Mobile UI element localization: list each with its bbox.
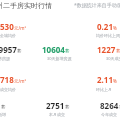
staticText: 州二手房实时行情 (0, 1, 52, 10)
staticText: 1227 (97, 44, 116, 55)
staticText: 套 (1, 104, 6, 110)
staticText: 本月新增 (0, 112, 6, 117)
staticText: % (113, 78, 117, 84)
staticText: 套 (65, 104, 70, 110)
staticText: 在售房源 (0, 56, 10, 61)
staticText: 环比上月 (96, 87, 112, 92)
staticText: 元/m² (14, 25, 26, 31)
staticText: 套 (116, 48, 120, 54)
staticText: 均价环比上周 (96, 33, 120, 38)
staticText: *数据统计来自手动录入 (74, 2, 120, 9)
staticText: 2751 (46, 100, 65, 111)
staticText: 本月成交 (49, 112, 65, 117)
staticText: 39957 (0, 44, 17, 55)
staticText: 套 (119, 104, 120, 110)
staticText: 30天新增房源 (47, 56, 72, 61)
staticText: 套 (17, 48, 22, 54)
staticText: 套 (65, 48, 70, 54)
staticText: 今年成交 (101, 112, 117, 117)
staticText: % (113, 25, 117, 31)
staticText: 718 (0, 74, 14, 85)
staticText: 30天成交房源 (106, 56, 120, 61)
staticText: 成交均价 (0, 87, 16, 92)
staticText: 8264 (100, 100, 119, 111)
staticText: 0.21 (97, 21, 113, 32)
staticText: 元/m² (14, 78, 26, 84)
staticText: 全城均价 (0, 33, 16, 38)
staticText: 2.11 (97, 74, 113, 85)
staticText: 530 (0, 21, 14, 32)
staticText: 10604 (42, 44, 65, 55)
